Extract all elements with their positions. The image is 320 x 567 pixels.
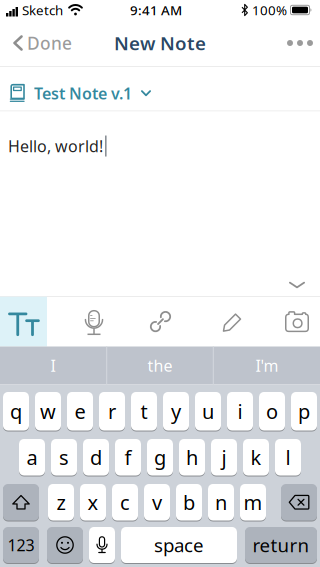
- staticText: v: [152, 489, 162, 516]
- staticText: i: [237, 398, 242, 425]
- button[interactable]: Dictate: [79, 297, 109, 346]
- staticText: b: [183, 489, 195, 516]
- button[interactable]: x: [80, 484, 106, 520]
- staticText: Sketch: [22, 1, 63, 19]
- staticText: u: [202, 398, 214, 425]
- button[interactable]: s: [51, 439, 77, 475]
- button[interactable]: n: [208, 484, 234, 520]
- staticText: m: [243, 489, 262, 516]
- button[interactable]: Add link: [145, 297, 175, 346]
- button[interactable]: Camera: [282, 297, 312, 346]
- button[interactable]: Done: [0, 21, 72, 65]
- staticText: k: [250, 444, 261, 471]
- staticText: 123: [7, 534, 34, 556]
- button[interactable]: Text formatting: [0, 297, 47, 346]
- staticText: e: [74, 398, 85, 425]
- button[interactable]: j: [211, 439, 237, 475]
- button[interactable]: p: [291, 392, 317, 430]
- button[interactable]: d: [83, 439, 109, 475]
- staticText: o: [266, 398, 278, 425]
- button[interactable]: Sketch: [217, 297, 247, 346]
- button[interactable]: b: [176, 484, 202, 520]
- button[interactable]: Shift: [3, 484, 39, 520]
- staticText: Test Note v.1: [34, 83, 132, 104]
- button[interactable]: Test Note v.1: [0, 67, 320, 111]
- staticText: w: [40, 398, 56, 425]
- button[interactable]: w: [35, 392, 61, 430]
- button[interactable]: v: [144, 484, 170, 520]
- button[interactable]: e: [67, 392, 93, 430]
- button[interactable]: z: [48, 484, 74, 520]
- staticText: I'm: [255, 355, 278, 376]
- button[interactable]: the: [107, 346, 213, 384]
- button[interactable]: I'm: [214, 346, 320, 384]
- staticText: d: [90, 444, 102, 471]
- staticText: g: [154, 444, 166, 471]
- button[interactable]: o: [259, 392, 285, 430]
- staticText: y: [171, 398, 181, 425]
- staticText: j: [221, 444, 226, 471]
- staticText: 100%: [252, 1, 287, 19]
- button[interactable]: t: [131, 392, 157, 430]
- staticText: z: [56, 489, 65, 516]
- button[interactable]: m: [240, 484, 266, 520]
- button[interactable]: f: [115, 439, 141, 475]
- button[interactable]: Dismiss keyboard: [282, 276, 312, 294]
- staticText: p: [298, 398, 310, 425]
- staticText: the: [147, 355, 172, 376]
- staticText: t: [140, 398, 147, 425]
- staticText: space: [154, 533, 204, 557]
- button[interactable]: i: [227, 392, 253, 430]
- button[interactable]: return: [245, 527, 317, 563]
- staticText: x: [87, 489, 98, 516]
- button[interactable]: r: [99, 392, 125, 430]
- staticText: l: [285, 444, 290, 471]
- staticText: c: [120, 489, 130, 516]
- staticText: return: [252, 533, 309, 557]
- button[interactable]: u: [195, 392, 221, 430]
- button[interactable]: Delete: [281, 484, 317, 520]
- button[interactable]: l: [275, 439, 301, 475]
- button[interactable]: Emoji: [47, 527, 83, 563]
- button[interactable]: a: [19, 439, 45, 475]
- staticText: r: [108, 398, 116, 425]
- button[interactable]: c: [112, 484, 138, 520]
- staticText: New Note: [114, 31, 206, 55]
- staticText: n: [215, 489, 227, 516]
- button[interactable]: Numbers: [3, 527, 39, 563]
- staticText: a: [26, 444, 37, 471]
- staticText: h: [186, 444, 198, 471]
- staticText: 9:41 AM: [130, 1, 182, 19]
- staticText: Hello, world!: [8, 135, 103, 157]
- staticText: f: [124, 444, 131, 471]
- button[interactable]: space: [121, 527, 237, 563]
- button[interactable]: I: [0, 346, 106, 384]
- button[interactable]: h: [179, 439, 205, 475]
- staticText: s: [59, 444, 69, 471]
- staticText: I: [51, 355, 56, 376]
- button[interactable]: k: [243, 439, 269, 475]
- button[interactable]: y: [163, 392, 189, 430]
- staticText: q: [10, 398, 22, 425]
- button[interactable]: q: [3, 392, 29, 430]
- button[interactable]: Dictation: [89, 527, 115, 563]
- staticText: Done: [27, 31, 72, 54]
- button[interactable]: g: [147, 439, 173, 475]
- button[interactable]: More: [280, 21, 320, 65]
